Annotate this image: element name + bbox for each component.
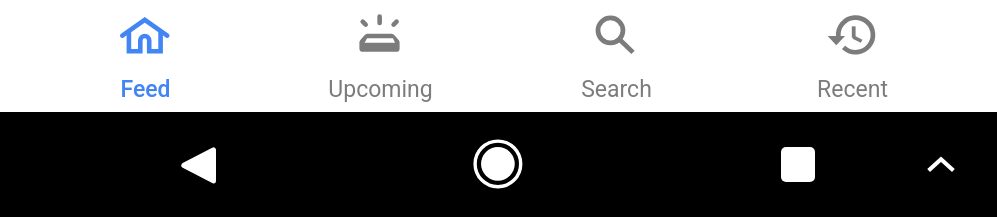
staticText: Feed	[120, 76, 171, 103]
button[interactable]: Recent apps	[758, 112, 838, 217]
button[interactable]: Hide keyboard	[901, 112, 981, 217]
button[interactable]: Upcoming	[262, 0, 498, 112]
button[interactable]: Feed	[27, 0, 263, 112]
button[interactable]: Back	[158, 112, 238, 217]
button[interactable]: Recent	[734, 0, 970, 112]
staticText: Upcoming	[328, 76, 433, 103]
button[interactable]: Home	[458, 112, 538, 217]
staticText: Search	[581, 76, 652, 103]
button[interactable]: Search	[498, 0, 734, 112]
staticText: Recent	[817, 76, 888, 103]
